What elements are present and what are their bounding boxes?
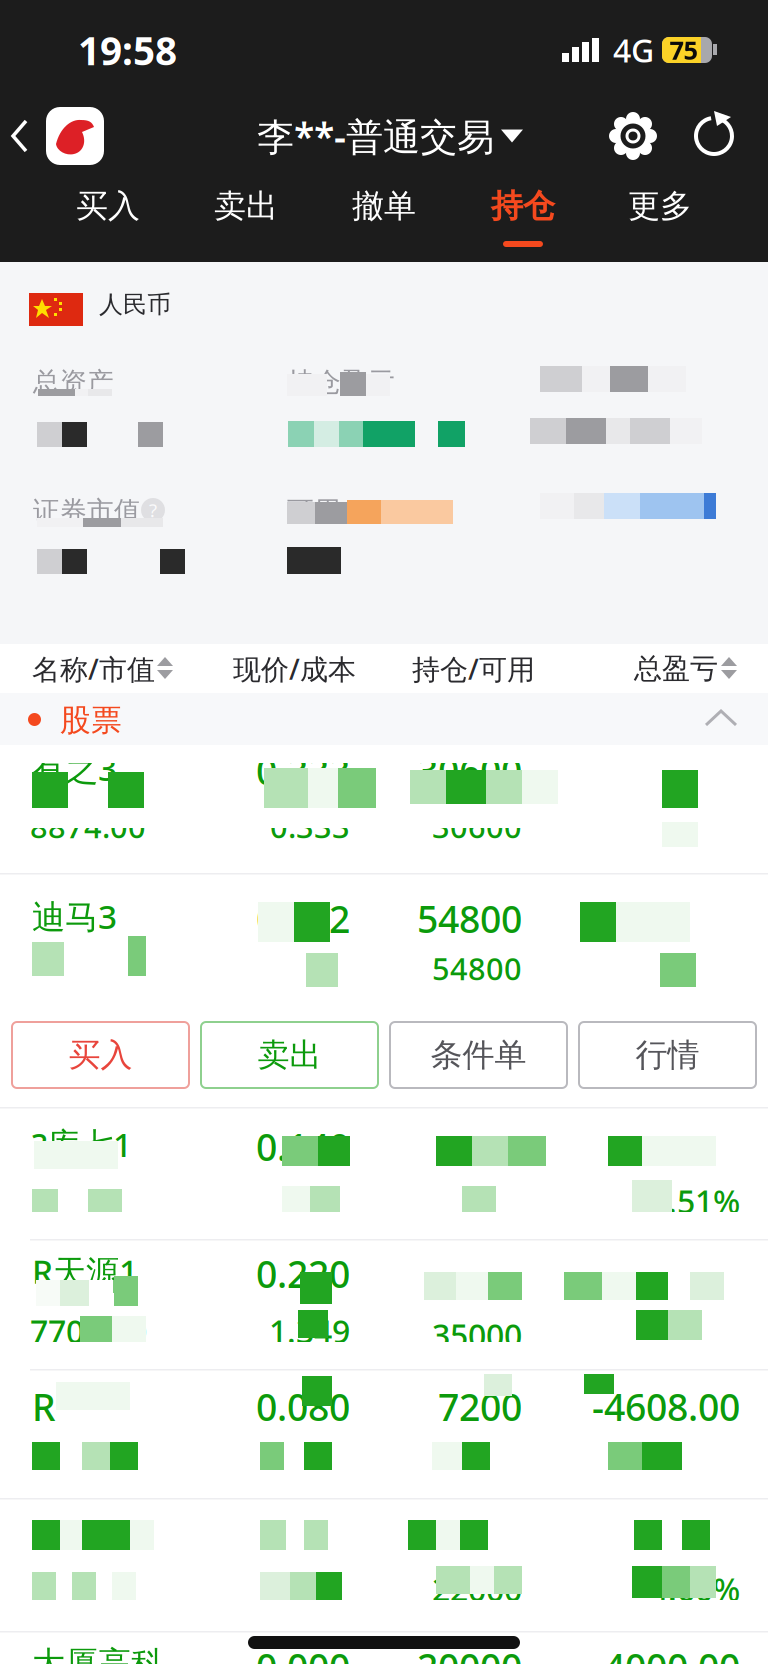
button[interactable]: Position row 迪马3 <box>0 874 768 1003</box>
button[interactable]: 持仓 <box>463 182 583 262</box>
button[interactable]: 更多 <box>600 182 720 262</box>
staticText: 买入 <box>76 186 140 226</box>
staticText: 8874.00 <box>30 806 146 847</box>
staticText: 4000.00 <box>604 1642 740 1664</box>
button[interactable]: Settings <box>609 112 657 160</box>
staticText: 现价/成本 <box>233 650 356 687</box>
staticText: R天源1 <box>32 1249 138 1293</box>
staticText: ?库七1 <box>32 1122 132 1166</box>
button[interactable]: 卖出 <box>186 182 306 262</box>
staticText: 条件单 <box>430 1035 526 1075</box>
staticText: 迪马3 <box>32 894 117 938</box>
button[interactable]: 行情 <box>579 1022 756 1088</box>
staticText: 总盈亏 <box>634 652 718 686</box>
staticText: 4.60% <box>650 1568 740 1610</box>
staticText: 0.000 <box>256 1642 350 1664</box>
staticText: 35000 <box>432 1314 522 1356</box>
staticText: 22000 <box>432 1568 522 1610</box>
staticText: 人民币 <box>99 290 171 319</box>
staticText: -4608.00 <box>592 1382 740 1431</box>
staticText: 持仓盈亏 <box>287 366 395 398</box>
staticText: 李**-普通交易 <box>257 111 494 161</box>
button[interactable]: 买入 <box>48 182 168 262</box>
staticText: 1.349 <box>269 1310 350 1352</box>
staticText: 0.222 <box>256 894 350 943</box>
staticText: R <box>32 1382 56 1431</box>
staticText: 20000 <box>417 1642 522 1664</box>
staticText: 行情 <box>635 1035 699 1075</box>
staticText: 持仓/可用 <box>412 650 535 687</box>
staticText: - <box>668 1310 678 1352</box>
staticText: 7200 <box>438 1382 522 1431</box>
staticText: 30600 <box>432 806 522 847</box>
button[interactable]: Position row 4 <box>0 1240 768 1370</box>
button[interactable]: 卖出 <box>201 1022 378 1088</box>
staticText: ? <box>149 498 157 522</box>
staticText: — — — <box>534 414 604 440</box>
staticText: ··· <box>86 1178 113 1220</box>
staticText: 股票 <box>60 702 122 739</box>
button[interactable]: 条件单 <box>390 1022 567 1088</box>
staticText: 大厦高科 <box>32 1643 164 1664</box>
staticText: 更多 <box>628 186 692 226</box>
button[interactable]: Back <box>2 111 50 161</box>
staticText: 卖出 <box>214 186 278 226</box>
staticText: 5 <box>32 1180 50 1222</box>
staticText: 0.51% <box>650 1180 740 1222</box>
button[interactable]: 买入 <box>12 1022 189 1088</box>
staticText: 30600 <box>417 746 522 795</box>
staticText: 54800 <box>432 948 522 989</box>
staticText: 买入 <box>68 1035 132 1075</box>
button[interactable]: Position row 1 <box>0 745 768 873</box>
button[interactable]: 撤单 <box>324 182 444 262</box>
staticText: 0.333 <box>270 806 350 847</box>
button[interactable]: Position row 5 <box>0 1370 768 1499</box>
staticText: 持仓 <box>491 186 555 226</box>
staticText: 名称/市值 <box>32 650 155 687</box>
staticText: 0.140 <box>256 1122 350 1171</box>
staticText: 撤单 <box>352 186 416 226</box>
staticText: 总资产 <box>33 366 114 398</box>
staticText: 54800 <box>417 894 522 943</box>
staticText: 4G <box>613 29 654 71</box>
button[interactable]: Refresh <box>691 110 739 162</box>
button[interactable]: Collapse 股票 section <box>700 699 742 739</box>
staticText: 7700.00 <box>30 1310 147 1352</box>
staticText: 75 <box>669 33 697 67</box>
button[interactable]: 李**-普通交易 <box>240 106 540 166</box>
staticText: 可用 <box>287 495 341 527</box>
staticText: 证券市值 <box>33 495 141 527</box>
staticText: 19:58 <box>78 24 177 76</box>
button[interactable]: Position row 3 <box>0 1108 768 1239</box>
staticText: 0.220 <box>256 1249 350 1298</box>
staticText: 有之3 <box>32 746 117 790</box>
staticText: 卖出 <box>257 1035 321 1075</box>
staticText: 0.080 <box>256 1382 350 1431</box>
staticText: 0.333 <box>256 746 350 795</box>
button[interactable]: Position row 6 <box>0 1499 768 1631</box>
